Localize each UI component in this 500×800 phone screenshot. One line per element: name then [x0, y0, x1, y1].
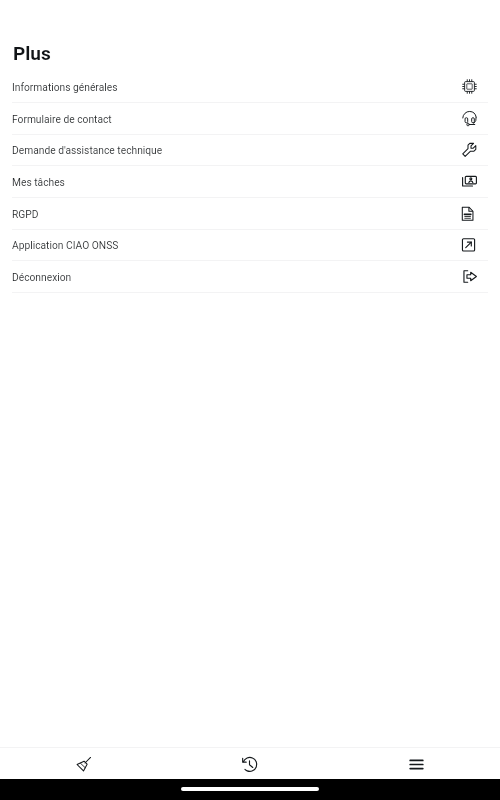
staticText: RGPD [12, 208, 39, 220]
staticText: Formulaire de contact [12, 113, 112, 125]
button[interactable]: RGPD [0, 198, 500, 230]
staticText: Demande d'assistance technique [12, 144, 163, 156]
staticText: Informations générales [12, 81, 118, 93]
button[interactable]: Menu [333, 748, 500, 779]
button[interactable]: Demande d'assistance technique [0, 134, 500, 166]
button[interactable]: Informations générales [0, 71, 500, 103]
button[interactable]: Application CIAO ONSS [0, 229, 500, 261]
button[interactable]: Historique [166, 748, 333, 779]
button[interactable]: Formulaire de contact [0, 103, 500, 135]
button[interactable]: Déconnexion [0, 261, 500, 293]
staticText: Déconnexion [12, 271, 72, 283]
button[interactable]: Mes tâches [0, 166, 500, 198]
staticText: Application CIAO ONSS [12, 239, 119, 251]
button[interactable]: Nettoyage [0, 748, 166, 779]
staticText: Mes tâches [12, 176, 65, 188]
staticText: Plus [13, 42, 51, 64]
